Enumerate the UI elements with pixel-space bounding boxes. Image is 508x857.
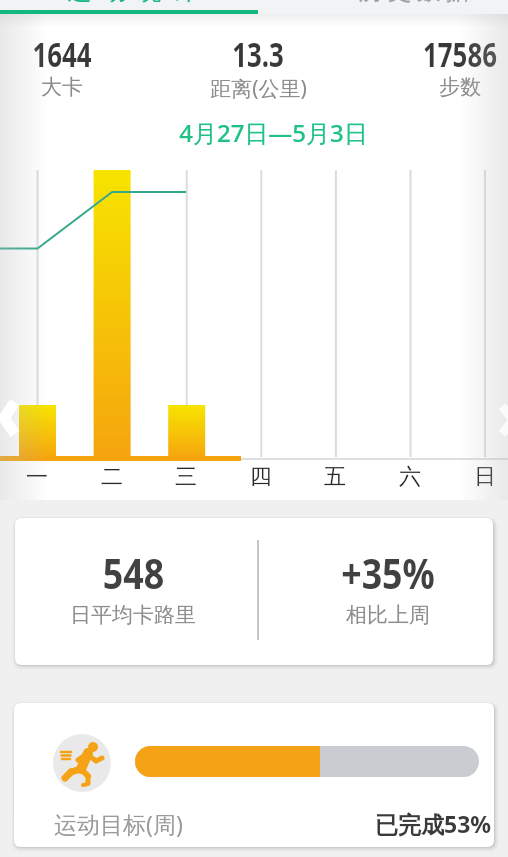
staticText: 二 (101, 463, 123, 491)
staticText: 距离(公里) (210, 74, 307, 103)
staticText: 一 (26, 463, 48, 491)
staticText: 13.3 (232, 31, 284, 77)
staticText: +35% (341, 544, 435, 601)
button[interactable] (494, 398, 508, 442)
staticText: 已完成53% (375, 808, 492, 839)
staticText: 日 (474, 463, 496, 491)
staticText: 4月27日—5月3日 (179, 116, 368, 149)
button[interactable]: 运动目标(周) (14, 703, 494, 847)
staticText: 1644 (32, 31, 92, 77)
staticText: 大卡 (41, 74, 83, 100)
staticText: 五 (324, 463, 346, 491)
button[interactable] (254, 0, 508, 14)
button[interactable] (0, 0, 254, 14)
staticText: 三 (175, 463, 197, 491)
staticText: 步数 (439, 74, 481, 100)
staticText: 日平均卡路里 (70, 602, 196, 628)
staticText: 相比上周 (346, 602, 430, 628)
staticText: 六 (399, 463, 421, 491)
button[interactable]: 548 (15, 518, 493, 665)
staticText: 运动目标(周) (54, 808, 183, 839)
button[interactable] (0, 396, 24, 442)
staticText: 548 (102, 544, 164, 601)
staticText: 四 (250, 463, 272, 491)
staticText: 17586 (423, 31, 497, 77)
